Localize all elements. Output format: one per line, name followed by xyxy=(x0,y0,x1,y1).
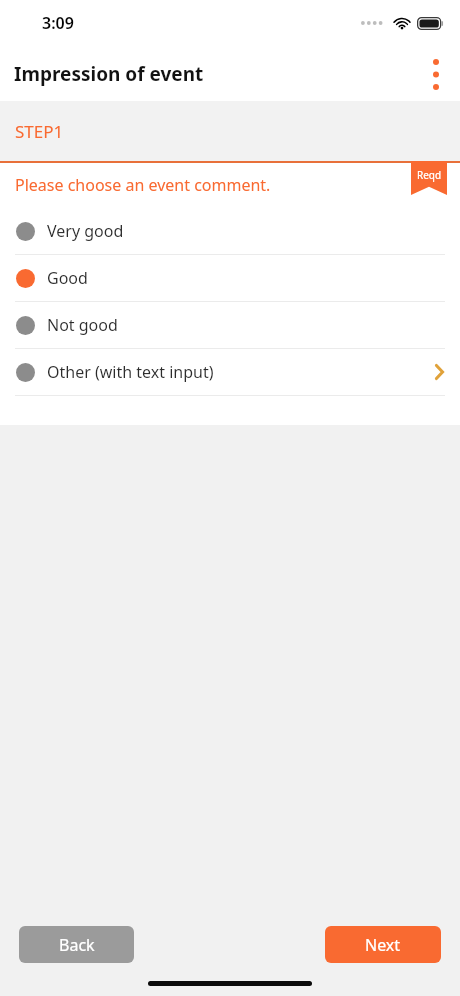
staticText: Reqd xyxy=(417,168,442,182)
button[interactable]: Other (with text input) xyxy=(0,349,460,395)
staticText: 3:09 xyxy=(42,12,74,34)
button[interactable]: Next xyxy=(325,926,441,963)
staticText: Not good xyxy=(47,314,118,336)
staticText: Impression of event xyxy=(14,61,204,87)
button[interactable]: Not good xyxy=(0,302,460,348)
button[interactable]: Very good xyxy=(0,208,460,254)
staticText: Very good xyxy=(47,220,124,242)
staticText: Next xyxy=(365,934,401,956)
button[interactable]: More options xyxy=(412,50,460,98)
staticText: Please choose an event comment. xyxy=(15,174,271,196)
button[interactable]: Back xyxy=(19,926,134,963)
staticText: Back xyxy=(59,934,95,956)
staticText: Other (with text input) xyxy=(47,361,214,383)
staticText: STEP1 xyxy=(15,120,64,143)
staticText: Good xyxy=(47,267,88,289)
button[interactable]: Good xyxy=(0,255,460,301)
